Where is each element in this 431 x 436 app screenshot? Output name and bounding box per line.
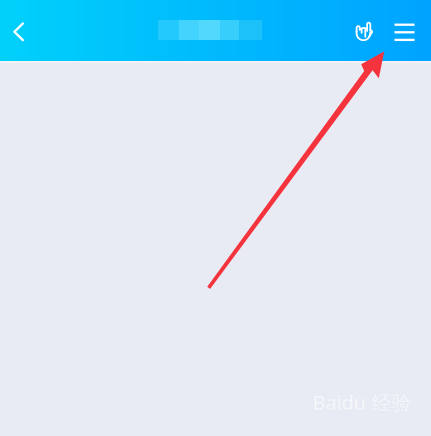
- button[interactable]: Menu: [384, 2, 424, 63]
- button[interactable]: Gestures: [345, 1, 383, 62]
- staticText: Baidu 经验: [312, 389, 411, 416]
- button[interactable]: Back: [0, 1, 41, 62]
- staticText: Baidu 经验: [311, 390, 410, 416]
